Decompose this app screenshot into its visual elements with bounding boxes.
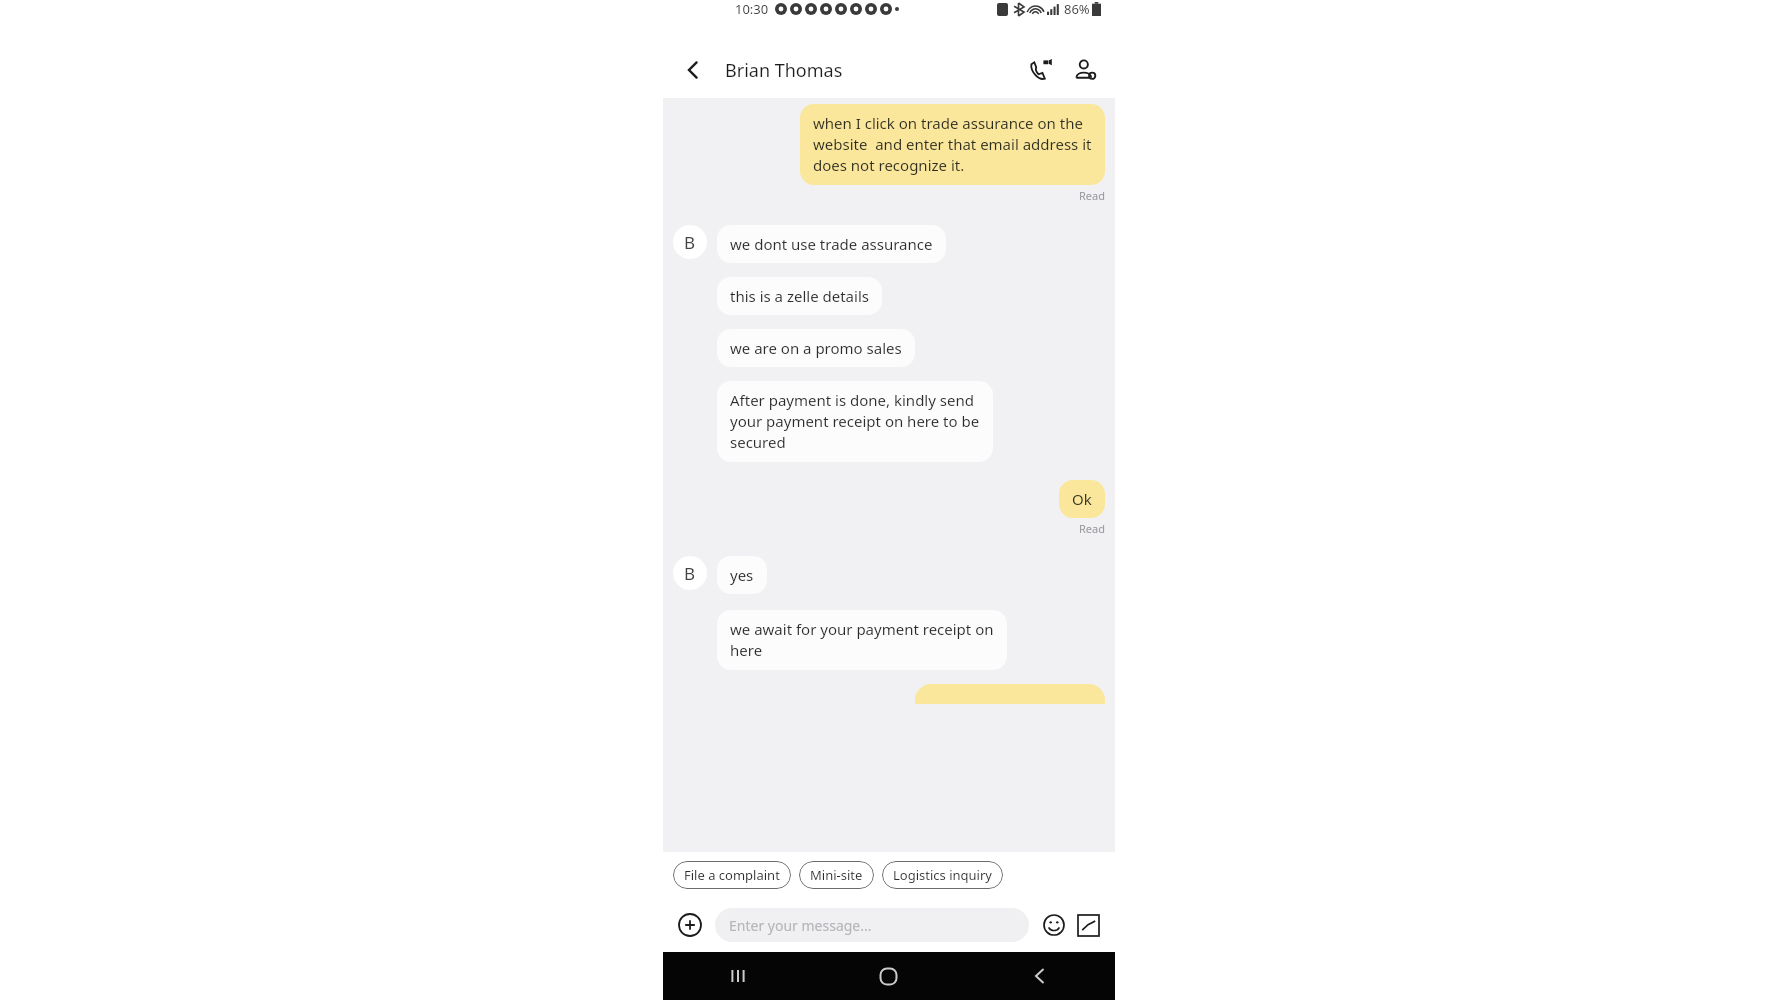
staticText: when I click on trade assurance on the w…: [813, 113, 1092, 176]
button[interactable]: Add attachment: [673, 908, 707, 942]
staticText: we dont use trade assurance: [730, 234, 933, 254]
staticText: Read: [1079, 188, 1105, 203]
staticText: Mini-site: [810, 866, 863, 884]
button[interactable]: B: [673, 556, 707, 590]
staticText: Read: [1079, 521, 1105, 536]
staticText: we await for your payment receipt on her…: [730, 619, 994, 661]
button[interactable]: Send image: [1071, 908, 1105, 942]
staticText: B: [684, 231, 696, 254]
staticText: we are on a promo sales: [730, 338, 902, 358]
button[interactable]: we await for your payment receipt on her…: [717, 610, 1007, 670]
staticText: Logistics inquiry: [893, 866, 992, 884]
staticText: File a complaint: [684, 866, 780, 884]
staticText: After payment is done, kindly send your …: [730, 390, 980, 453]
button[interactable]: we are on a promo sales: [717, 329, 915, 367]
button[interactable]: when I click on trade assurance on the w…: [800, 104, 1105, 185]
button[interactable]: Recents: [663, 952, 813, 1000]
staticText: Ok: [1072, 489, 1092, 509]
staticText: 10:30: [735, 0, 769, 18]
button[interactable]: Emoji: [1037, 908, 1071, 942]
button[interactable]: Home: [813, 952, 964, 1000]
staticText: this is a zelle details: [730, 286, 869, 306]
staticText: B: [684, 562, 696, 585]
button[interactable]: we dont use trade assurance: [717, 225, 946, 263]
button[interactable]: this is a zelle details: [717, 277, 882, 315]
button[interactable]: Back: [671, 48, 715, 92]
button[interactable]: Video call: [1019, 48, 1063, 92]
button[interactable]: B: [673, 225, 707, 259]
staticText: 86%: [1064, 0, 1090, 18]
button[interactable]: Contact info: [1063, 48, 1107, 92]
button[interactable]: After payment is done, kindly send your …: [717, 381, 993, 462]
button[interactable]: Logistics inquiry: [882, 861, 1003, 889]
staticText: Brian Thomas: [725, 58, 843, 83]
button[interactable]: Ok: [1059, 480, 1105, 518]
staticText: yes: [730, 565, 754, 585]
button[interactable]: Enter your message...: [715, 908, 1029, 942]
button[interactable]: Back: [964, 952, 1115, 1000]
staticText: Enter your message...: [729, 916, 872, 935]
button[interactable]: yes: [717, 556, 767, 594]
button[interactable]: Mini-site: [799, 861, 874, 889]
button[interactable]: File a complaint: [673, 861, 791, 889]
